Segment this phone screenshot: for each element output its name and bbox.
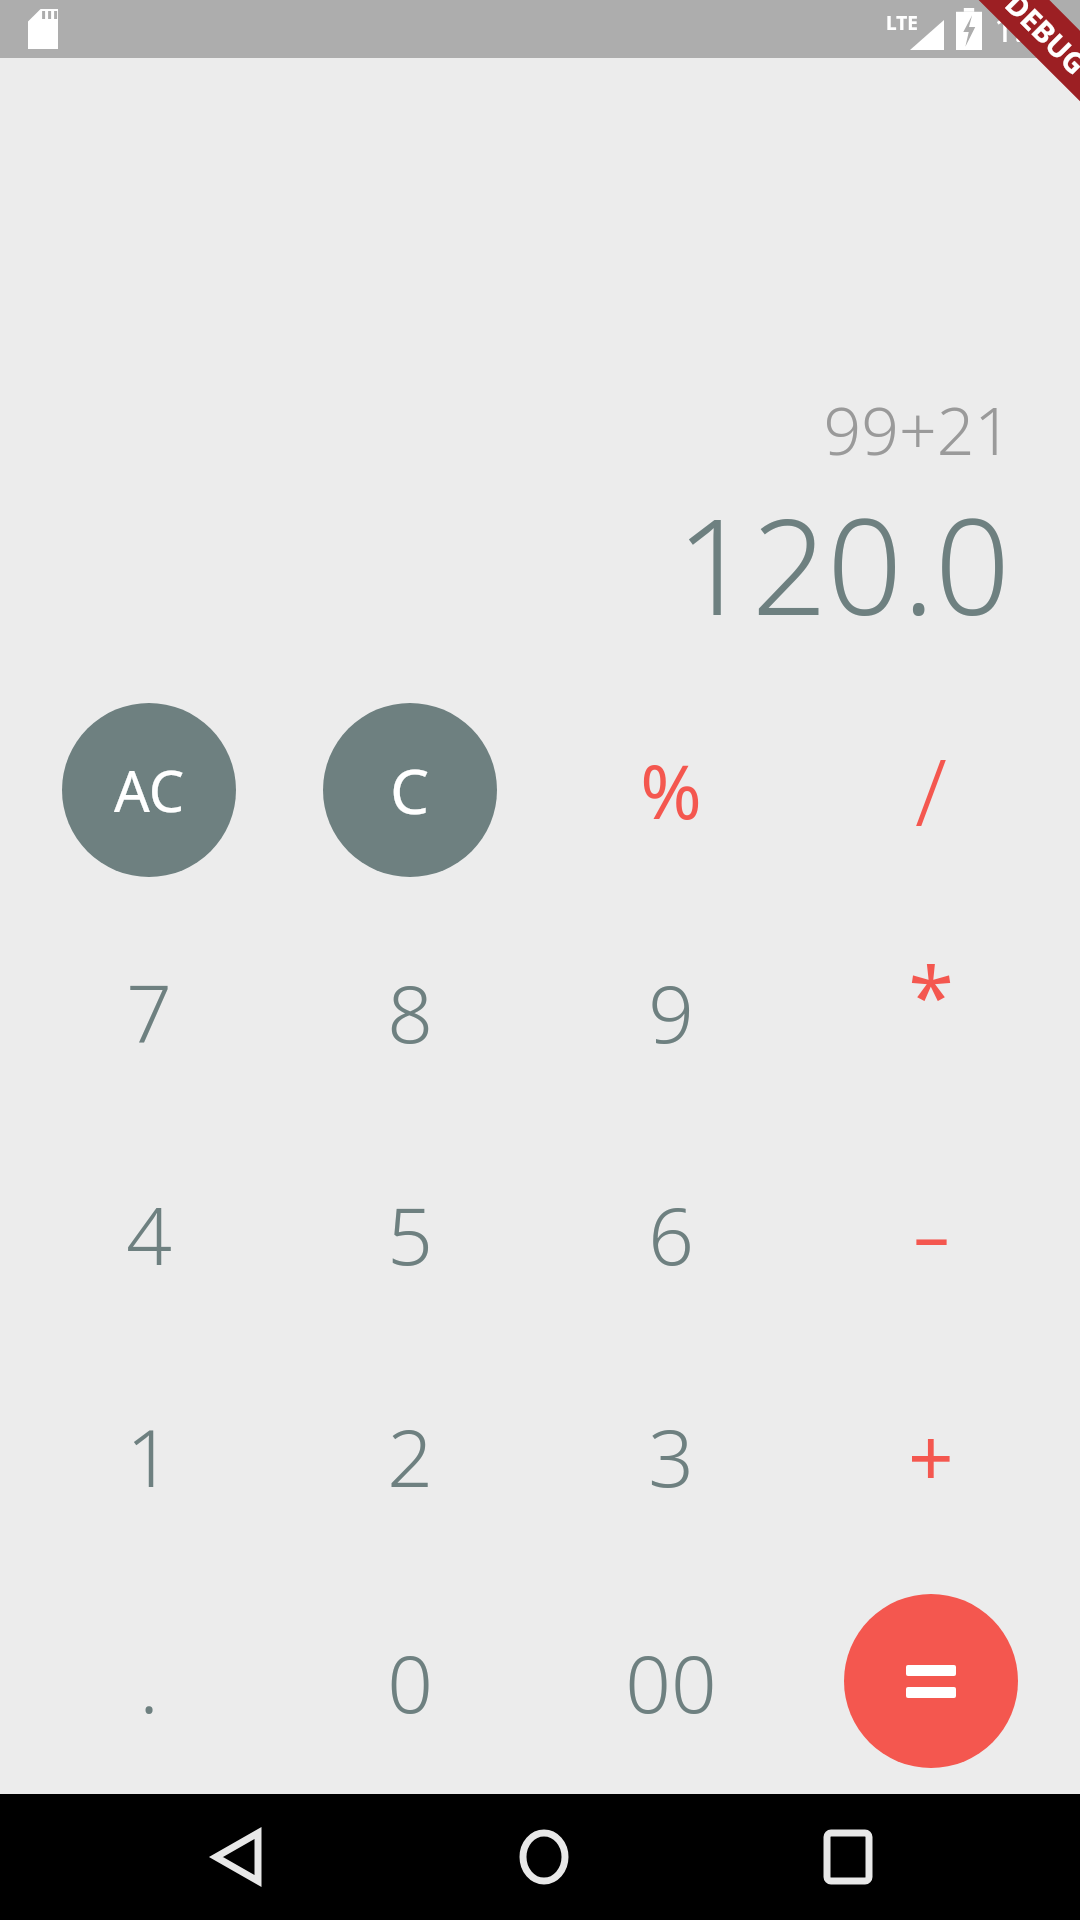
staticText: 0	[387, 1627, 433, 1736]
button[interactable]: AC	[62, 703, 236, 877]
button[interactable]: *	[836, 900, 1026, 1090]
button[interactable]: .	[54, 1586, 244, 1776]
staticText: 1:57	[994, 5, 1064, 53]
staticText: .	[139, 1627, 159, 1736]
button[interactable]: Equals	[844, 1594, 1018, 1768]
staticText: /	[915, 728, 947, 853]
button[interactable]: 5	[315, 1138, 505, 1328]
button[interactable]: 9	[576, 916, 766, 1106]
staticText: 120.0	[676, 474, 1010, 654]
button[interactable]: 7	[54, 916, 244, 1106]
button[interactable]: 00	[576, 1586, 766, 1776]
button[interactable]: 1	[54, 1360, 244, 1550]
staticText: 2	[387, 1401, 433, 1510]
button[interactable]: 8	[315, 916, 505, 1106]
button[interactable]: 0	[315, 1586, 505, 1776]
button[interactable]: Recent apps	[788, 1797, 908, 1917]
staticText: 6	[648, 1179, 694, 1288]
staticText: 9	[648, 957, 694, 1066]
button[interactable]: 3	[576, 1360, 766, 1550]
staticText: 8	[387, 957, 433, 1066]
staticText: 00	[625, 1627, 717, 1736]
staticText: –	[913, 1184, 950, 1282]
staticText: 3	[648, 1401, 694, 1510]
button[interactable]: 2	[315, 1360, 505, 1550]
staticText: *	[908, 939, 954, 1051]
button[interactable]: %	[576, 695, 766, 885]
staticText: 99+21	[823, 384, 1012, 474]
staticText: 1	[126, 1401, 172, 1510]
staticText: 7	[126, 957, 172, 1066]
staticText: LTE	[886, 10, 918, 36]
staticText: C	[390, 748, 430, 832]
button[interactable]: +	[836, 1360, 1026, 1550]
staticText: DEBUG	[997, 0, 1080, 82]
staticText: 5	[387, 1179, 433, 1288]
button[interactable]: 4	[54, 1138, 244, 1328]
button[interactable]: Home	[484, 1797, 604, 1917]
staticText: 4	[126, 1179, 172, 1288]
button[interactable]: Back	[177, 1797, 297, 1917]
button[interactable]: 6	[576, 1138, 766, 1328]
button[interactable]: –	[836, 1138, 1026, 1328]
staticText: AC	[114, 752, 185, 828]
button[interactable]: C	[323, 703, 497, 877]
staticText: %	[640, 740, 702, 841]
staticText: +	[908, 1401, 954, 1510]
button[interactable]: /	[836, 695, 1026, 885]
